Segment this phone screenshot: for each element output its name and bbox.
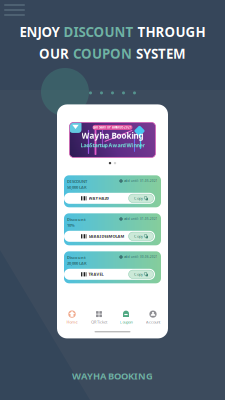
staticText: Coupon xyxy=(119,319,132,325)
staticText: TRAVEL xyxy=(88,272,103,277)
button[interactable]: Discount xyxy=(64,213,161,245)
button[interactable]: Account xyxy=(139,310,166,325)
staticText: Copy xyxy=(134,196,143,201)
staticText: valid until: 30-06-2021 xyxy=(124,255,158,259)
staticText: Copy xyxy=(134,272,143,277)
button[interactable]: Home xyxy=(58,310,85,325)
staticText: Copy xyxy=(134,234,143,239)
staticText: SYSTEM xyxy=(136,45,186,62)
staticText: QR Ticket xyxy=(91,319,107,325)
staticText: DISCOUNT xyxy=(67,179,87,184)
staticText: WAYHA BOOKING xyxy=(72,370,153,382)
staticText: 20,000 LAK xyxy=(67,260,87,266)
staticText: valid until: 31-05-2021 xyxy=(124,217,158,221)
staticText: 50,000 LAK xyxy=(67,184,87,190)
staticText: OUR xyxy=(39,45,69,62)
staticText: ENJOY xyxy=(19,23,59,41)
button[interactable]: DISCOUNT xyxy=(64,175,161,207)
staticText: THROUGH xyxy=(137,23,205,41)
staticText: COUPON xyxy=(73,45,132,62)
staticText: LAO STARTUP AWARDS 2021 xyxy=(93,126,132,129)
staticText: Wayha Booking xyxy=(81,130,143,141)
staticText: Discount xyxy=(67,217,86,222)
staticText: DISCOUNT xyxy=(63,23,133,41)
staticText: valid until: 31-05-2021 xyxy=(124,179,158,183)
staticText: LaoStartup Award Winner xyxy=(80,141,144,149)
staticText: 10% xyxy=(67,222,75,228)
button[interactable]: QR Ticket xyxy=(85,310,112,325)
staticText: Home xyxy=(66,319,77,325)
button[interactable]: Discount xyxy=(64,251,161,283)
staticText: SABAIDEEMOLAM xyxy=(88,234,124,239)
staticText: WAYHA20 xyxy=(88,196,108,201)
button[interactable]: Coupon xyxy=(112,310,139,325)
button[interactable]: Menu xyxy=(0,0,33,20)
staticText: Account xyxy=(146,319,160,325)
staticText: Discount xyxy=(67,255,86,260)
